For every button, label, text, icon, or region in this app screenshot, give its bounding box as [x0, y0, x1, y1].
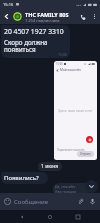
staticText: 15:16 — [3, 2, 14, 7]
button[interactable]: Home — [44, 211, 56, 223]
button[interactable]: 1 июня — [38, 162, 62, 171]
button[interactable]: Call — [76, 10, 89, 23]
staticText: THC FAMILY 80S — [25, 11, 69, 18]
staticText: Скоро должна появиться — [4, 38, 67, 54]
staticText: Уже пришло — [55, 189, 77, 194]
staticText: Да, спасибо — [55, 184, 76, 189]
button[interactable]: Back — [0, 10, 13, 23]
staticText: 15:06 — [58, 52, 67, 57]
staticText: 20 4507 1927 3310 — [4, 27, 64, 36]
staticText: Здесь пока ничего нет — [58, 109, 93, 113]
button[interactable]: 20 4507 1927 3310 — [1, 25, 70, 58]
button[interactable]: Voice message — [87, 196, 98, 207]
button[interactable]: Attach — [75, 196, 86, 207]
button[interactable]: Да, спасибо — [53, 183, 89, 197]
staticText: 1 июня — [41, 163, 59, 170]
staticText: Открыть — [80, 152, 91, 156]
staticText: Сообщение — [14, 198, 48, 206]
button[interactable]: Открыть — [77, 151, 94, 157]
button[interactable]: Появились? — [1, 172, 48, 184]
button[interactable]: Add — [86, 136, 93, 143]
staticText: Подключите кошелёк — [57, 148, 85, 152]
button[interactable]: Recents — [72, 211, 84, 223]
button[interactable]: More options — [89, 11, 100, 22]
staticText: Мой кошелёк — [60, 68, 82, 72]
staticText: Появились? — [4, 174, 39, 182]
button[interactable]: Emoji — [2, 196, 13, 207]
button[interactable]: Scroll to bottom — [85, 180, 98, 193]
button[interactable]: Back — [16, 211, 28, 223]
staticText: 1 254 подписчика — [25, 18, 60, 23]
button[interactable]: 15:06 — [54, 61, 97, 160]
staticText: 15:06 — [56, 62, 63, 66]
